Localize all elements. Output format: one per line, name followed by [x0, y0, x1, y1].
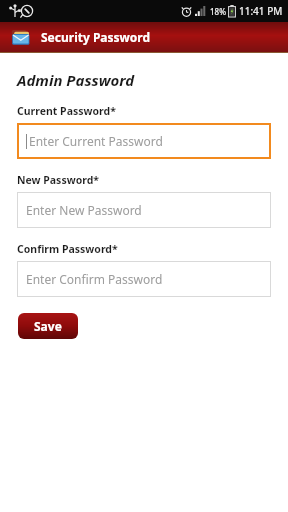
button[interactable]: Save — [18, 313, 78, 339]
button[interactable]: Enter Current Password — [17, 123, 271, 159]
staticText: Enter New Password — [26, 202, 142, 218]
staticText: Enter Current Password — [29, 133, 163, 149]
staticText: 18% — [210, 6, 226, 17]
staticText: Save — [34, 318, 62, 334]
staticText: 11:41 PM — [239, 4, 283, 18]
staticText: Confirm Password* — [17, 242, 118, 256]
staticText: New Password* — [17, 173, 100, 187]
staticText: Admin Password — [17, 70, 135, 90]
staticText: Current Password* — [17, 104, 116, 118]
button[interactable]: Enter New Password — [17, 192, 271, 228]
staticText: Enter Confirm Password — [26, 271, 163, 287]
staticText: Security Password — [41, 29, 151, 45]
button[interactable]: Enter Confirm Password — [17, 261, 271, 297]
